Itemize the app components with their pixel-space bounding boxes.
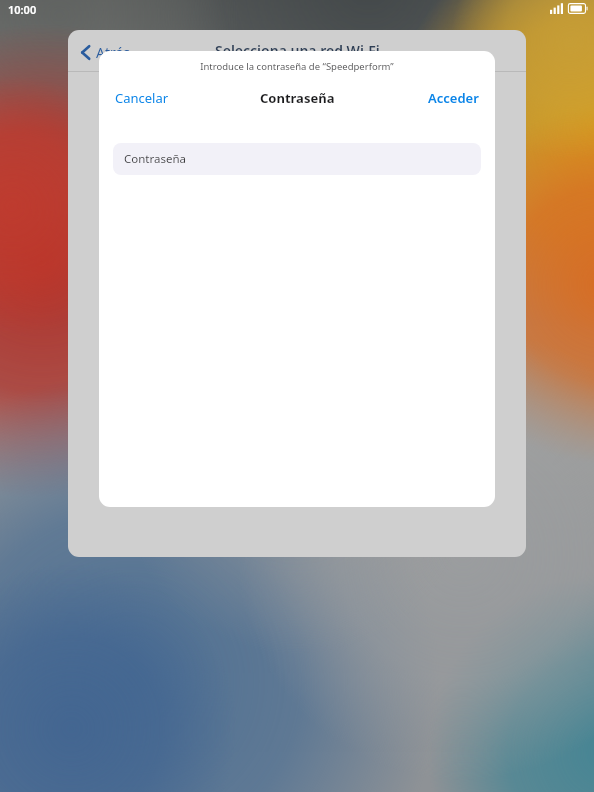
button[interactable]: Cancelar [115, 89, 169, 107]
staticText: Contraseña [124, 151, 187, 167]
button[interactable]: Contraseña [113, 143, 481, 175]
staticText: Acceder [428, 89, 479, 107]
button[interactable]: Atrás [72, 38, 158, 66]
staticText: Contraseña [260, 89, 335, 107]
staticText: Selecciona una red Wi-Fi [215, 41, 380, 60]
staticText: Cancelar [115, 89, 169, 107]
staticText: Atrás [96, 43, 131, 62]
staticText: Introduce la contraseña de “Speedperform… [200, 60, 394, 73]
staticText: 10:00 [8, 2, 37, 17]
button[interactable]: Acceder [428, 89, 479, 107]
